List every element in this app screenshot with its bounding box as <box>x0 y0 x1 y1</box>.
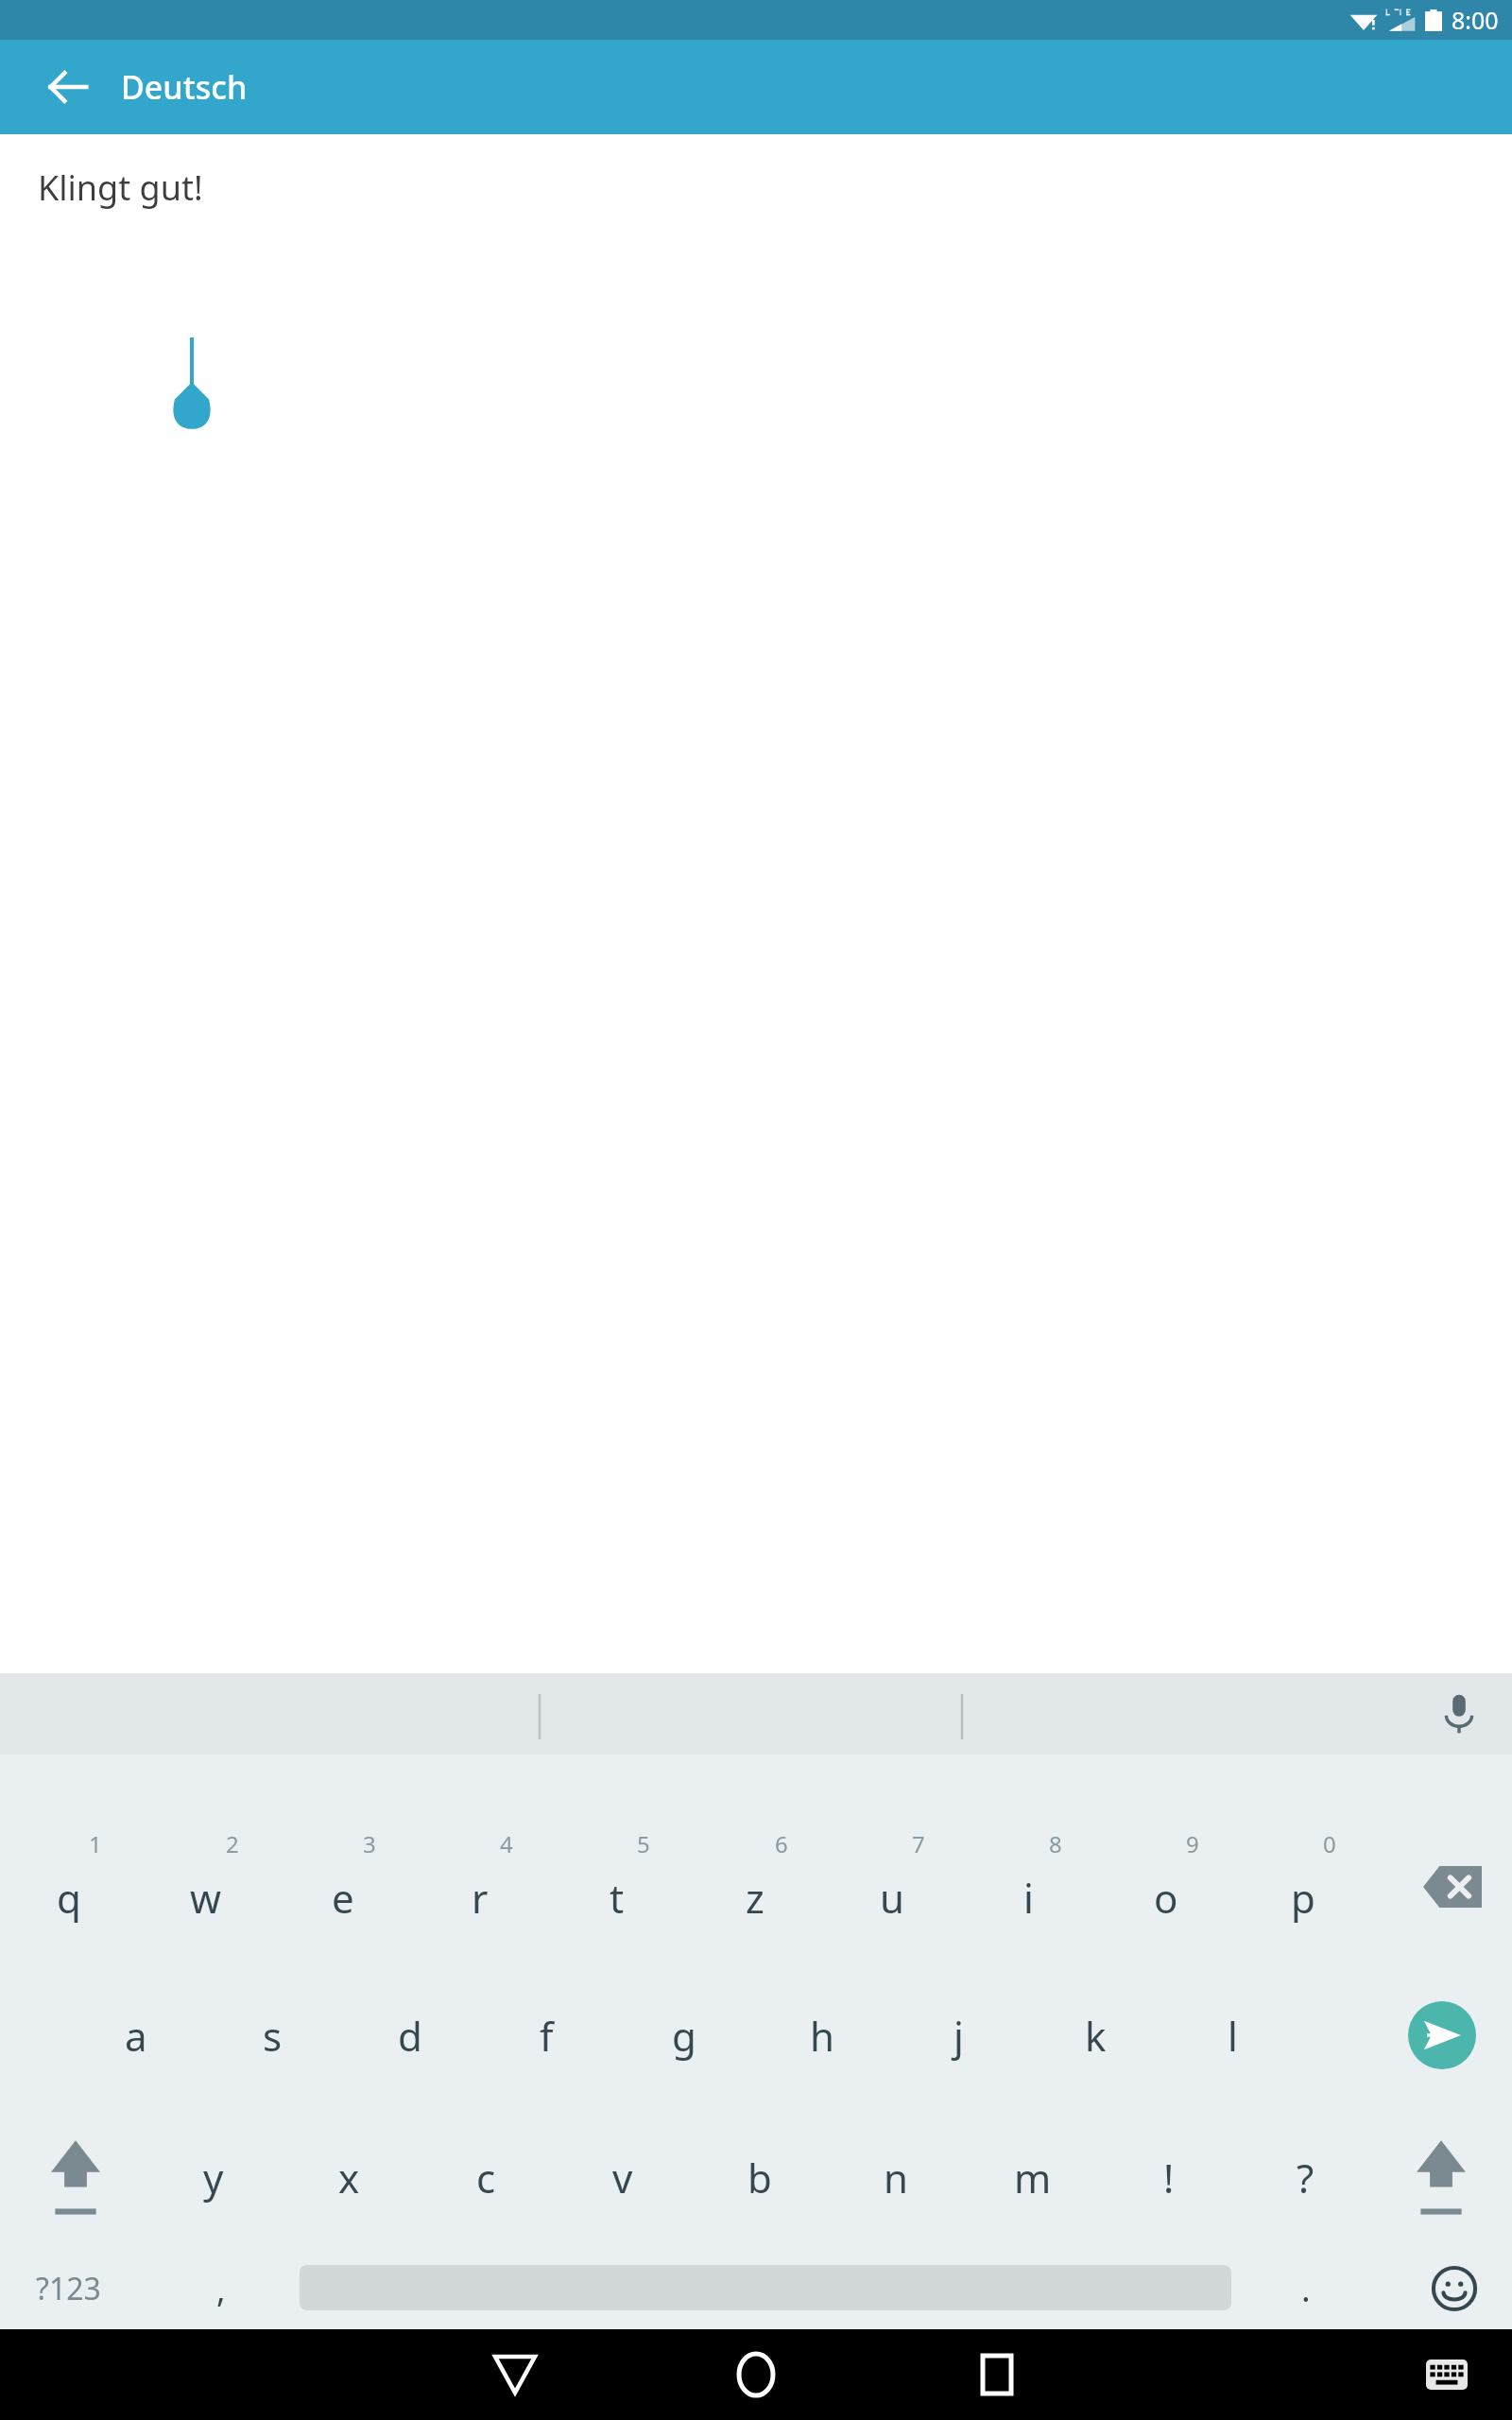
button[interactable]: 2 <box>137 1813 274 1960</box>
staticText: s <box>263 2009 283 2063</box>
button[interactable]: Back <box>23 42 113 132</box>
button[interactable]: Send <box>1372 1964 1512 2106</box>
staticText: v <box>612 2151 633 2204</box>
button[interactable]: 7 <box>823 1813 960 1960</box>
staticText: b <box>747 2151 772 2204</box>
staticText: 2 <box>226 1828 239 1859</box>
button[interactable]: Back <box>458 2329 572 2420</box>
button[interactable]: y <box>145 2106 282 2248</box>
staticText: q <box>57 1871 81 1925</box>
button[interactable]: 4 <box>411 1813 548 1960</box>
button[interactable]: Shift <box>1373 2106 1509 2248</box>
button[interactable]: ! <box>1100 2106 1237 2248</box>
staticText: 8:00 <box>1452 4 1499 36</box>
staticText: 7 <box>912 1828 925 1859</box>
button[interactable]: c <box>418 2106 555 2248</box>
staticText: 9 <box>1186 1828 1199 1859</box>
staticText: ? <box>1297 2151 1314 2204</box>
button[interactable]: n <box>827 2106 964 2248</box>
staticText: z <box>746 1871 765 1925</box>
staticText: 0 <box>1323 1828 1336 1859</box>
button[interactable]: ?123 <box>0 2248 137 2329</box>
button[interactable]: l <box>1164 1964 1301 2106</box>
button[interactable]: Switch keyboard <box>1404 2332 1489 2417</box>
staticText: f <box>540 2009 554 2063</box>
button[interactable]: g <box>615 1964 752 2106</box>
button[interactable]: Emoji <box>1397 2248 1512 2329</box>
staticText: p <box>1291 1871 1315 1925</box>
staticText: c <box>476 2151 496 2204</box>
button[interactable]: h <box>753 1964 890 2106</box>
staticText: k <box>1085 2009 1107 2063</box>
button[interactable]: , <box>152 2248 289 2329</box>
button[interactable]: b <box>691 2106 828 2248</box>
button[interactable]: f <box>478 1964 615 2106</box>
staticText: i <box>1023 1871 1034 1925</box>
staticText: . <box>1301 2266 1311 2312</box>
button[interactable]: 6 <box>686 1813 823 1960</box>
staticText: Deutsch <box>121 65 248 109</box>
staticText: h <box>810 2009 834 2063</box>
staticText: o <box>1154 1871 1178 1925</box>
staticText: ?123 <box>36 2268 101 2309</box>
button[interactable]: x <box>281 2106 418 2248</box>
button[interactable]: d <box>341 1964 478 2106</box>
staticText: 6 <box>775 1828 788 1859</box>
button[interactable]: Shift <box>8 2106 144 2248</box>
staticText: 3 <box>363 1828 376 1859</box>
staticText: 5 <box>637 1828 650 1859</box>
button[interactable]: Voice input <box>1425 1680 1493 1748</box>
button[interactable]: j <box>890 1964 1027 2106</box>
staticText: d <box>398 2009 422 2063</box>
staticText: t <box>610 1871 625 1925</box>
button[interactable]: Backspace <box>1393 1813 1512 1960</box>
staticText: j <box>954 2009 964 2063</box>
staticText: 1 <box>89 1828 102 1859</box>
button[interactable]: a <box>67 1964 204 2106</box>
staticText: ! <box>1163 2151 1175 2204</box>
staticText: , <box>216 2266 226 2312</box>
staticText: w <box>190 1871 222 1925</box>
button[interactable]: 8 <box>960 1813 1097 1960</box>
staticText: Klingt gut! <box>38 164 203 211</box>
button[interactable]: 1 <box>0 1813 137 1960</box>
button[interactable]: 0 <box>1234 1813 1371 1960</box>
staticText: y <box>203 2151 224 2204</box>
staticText: a <box>125 2009 147 2063</box>
staticText: 8 <box>1049 1828 1062 1859</box>
button[interactable]: s <box>204 1964 341 2106</box>
staticText: x <box>338 2151 360 2204</box>
button[interactable]: 5 <box>548 1813 685 1960</box>
staticText: g <box>672 2009 696 2063</box>
staticText: l <box>1228 2009 1238 2063</box>
staticText: 4 <box>500 1828 513 1859</box>
button[interactable]: 3 <box>274 1813 411 1960</box>
button[interactable]: ? <box>1237 2106 1374 2248</box>
button[interactable]: Home <box>699 2329 813 2420</box>
staticText: n <box>884 2151 908 2204</box>
staticText: u <box>880 1871 904 1925</box>
button[interactable]: . <box>1249 2248 1363 2329</box>
staticText: r <box>472 1871 489 1925</box>
staticText: e <box>332 1871 354 1925</box>
button[interactable]: 9 <box>1097 1813 1234 1960</box>
staticText: m <box>1014 2151 1052 2204</box>
button[interactable]: Recent apps <box>940 2329 1054 2420</box>
button[interactable]: k <box>1027 1964 1164 2106</box>
button[interactable]: m <box>964 2106 1101 2248</box>
button[interactable]: v <box>554 2106 691 2248</box>
